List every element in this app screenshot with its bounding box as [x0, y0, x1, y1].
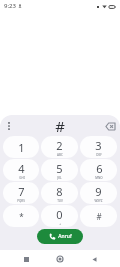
- staticText: 7: [18, 184, 25, 199]
- button[interactable]: 0: [41, 205, 78, 227]
- staticText: TUV: [57, 199, 63, 203]
- staticText: WXYZ: [94, 199, 103, 203]
- button[interactable]: Recents: [18, 251, 34, 267]
- staticText: 8: [56, 184, 63, 199]
- staticText: 1: [18, 140, 25, 155]
- button[interactable]: Backspace: [103, 119, 117, 133]
- button[interactable]: 2: [41, 136, 78, 158]
- staticText: 6: [96, 161, 103, 176]
- button[interactable]: Back: [86, 251, 102, 267]
- button[interactable]: #: [80, 205, 117, 227]
- button[interactable]: *: [3, 205, 39, 227]
- button[interactable]: 8: [41, 182, 78, 204]
- button[interactable]: Home: [52, 251, 68, 267]
- button[interactable]: 7: [3, 182, 39, 204]
- button[interactable]: 4: [3, 159, 39, 181]
- staticText: 9: [95, 184, 102, 199]
- staticText: #: [55, 116, 65, 136]
- button[interactable]: 6: [80, 159, 117, 181]
- button[interactable]: Anruf: [37, 229, 83, 244]
- button[interactable]: More options: [2, 119, 16, 133]
- staticText: 3: [95, 138, 102, 153]
- button[interactable]: 5: [41, 159, 78, 181]
- staticText: DEF: [96, 153, 102, 157]
- staticText: #: [96, 211, 102, 222]
- staticText: ABC: [57, 153, 63, 157]
- button[interactable]: 9: [80, 182, 117, 204]
- staticText: 2: [56, 138, 63, 153]
- button[interactable]: 1: [3, 136, 39, 158]
- staticText: *: [19, 211, 24, 222]
- staticText: 0: [56, 207, 63, 222]
- staticText: +: [59, 222, 61, 226]
- staticText: PQRS: [17, 199, 25, 203]
- button[interactable]: 3: [80, 136, 117, 158]
- staticText: 9:23: [4, 2, 16, 10]
- staticText: GHI: [19, 176, 25, 180]
- staticText: MNO: [95, 176, 103, 180]
- staticText: 4: [18, 161, 25, 176]
- staticText: 5: [56, 161, 63, 176]
- staticText: Anruf: [58, 233, 72, 240]
- staticText: JKL: [57, 176, 62, 180]
